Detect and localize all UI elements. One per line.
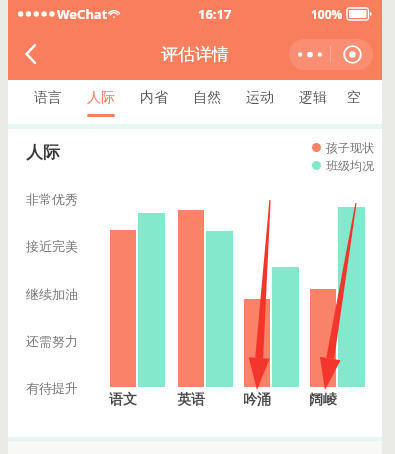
button[interactable]: 逻辑: [286, 80, 339, 124]
staticText: 逻辑: [299, 89, 327, 107]
staticText: 语文: [109, 391, 137, 409]
staticText: 继续加油: [26, 286, 78, 302]
button[interactable]: 人际: [74, 80, 127, 124]
staticText: 还需努力: [26, 333, 78, 349]
staticText: 有待提升: [26, 380, 78, 396]
staticText: 运动: [246, 89, 274, 107]
button[interactable]: Back: [8, 31, 54, 77]
staticText: 非常优秀: [26, 191, 78, 207]
staticText: WeChat: [57, 5, 108, 23]
staticText: 评估详情: [161, 44, 229, 65]
button[interactable]: More options: [289, 39, 330, 70]
staticText: 人际: [87, 89, 115, 107]
staticText: 语言: [34, 89, 62, 107]
staticText: 班级均况: [326, 158, 374, 173]
staticText: 人际: [26, 142, 60, 163]
staticText: 16:17: [198, 5, 232, 23]
staticText: 接近完美: [26, 238, 78, 254]
staticText: 英语: [177, 391, 205, 409]
staticText: 吟涌: [243, 391, 271, 409]
button[interactable]: 自然: [180, 80, 233, 124]
button[interactable]: 运动: [233, 80, 286, 124]
staticText: 自然: [193, 89, 221, 107]
staticText: 孩子现状: [326, 140, 374, 155]
button[interactable]: 空: [339, 80, 369, 124]
button[interactable]: 语言: [21, 80, 74, 124]
staticText: 阔崚: [309, 391, 337, 409]
staticText: 空: [347, 89, 361, 107]
staticText: 内省: [140, 89, 168, 107]
button[interactable]: Close: [331, 39, 373, 70]
button[interactable]: 内省: [127, 80, 180, 124]
staticText: 100%: [311, 6, 343, 22]
